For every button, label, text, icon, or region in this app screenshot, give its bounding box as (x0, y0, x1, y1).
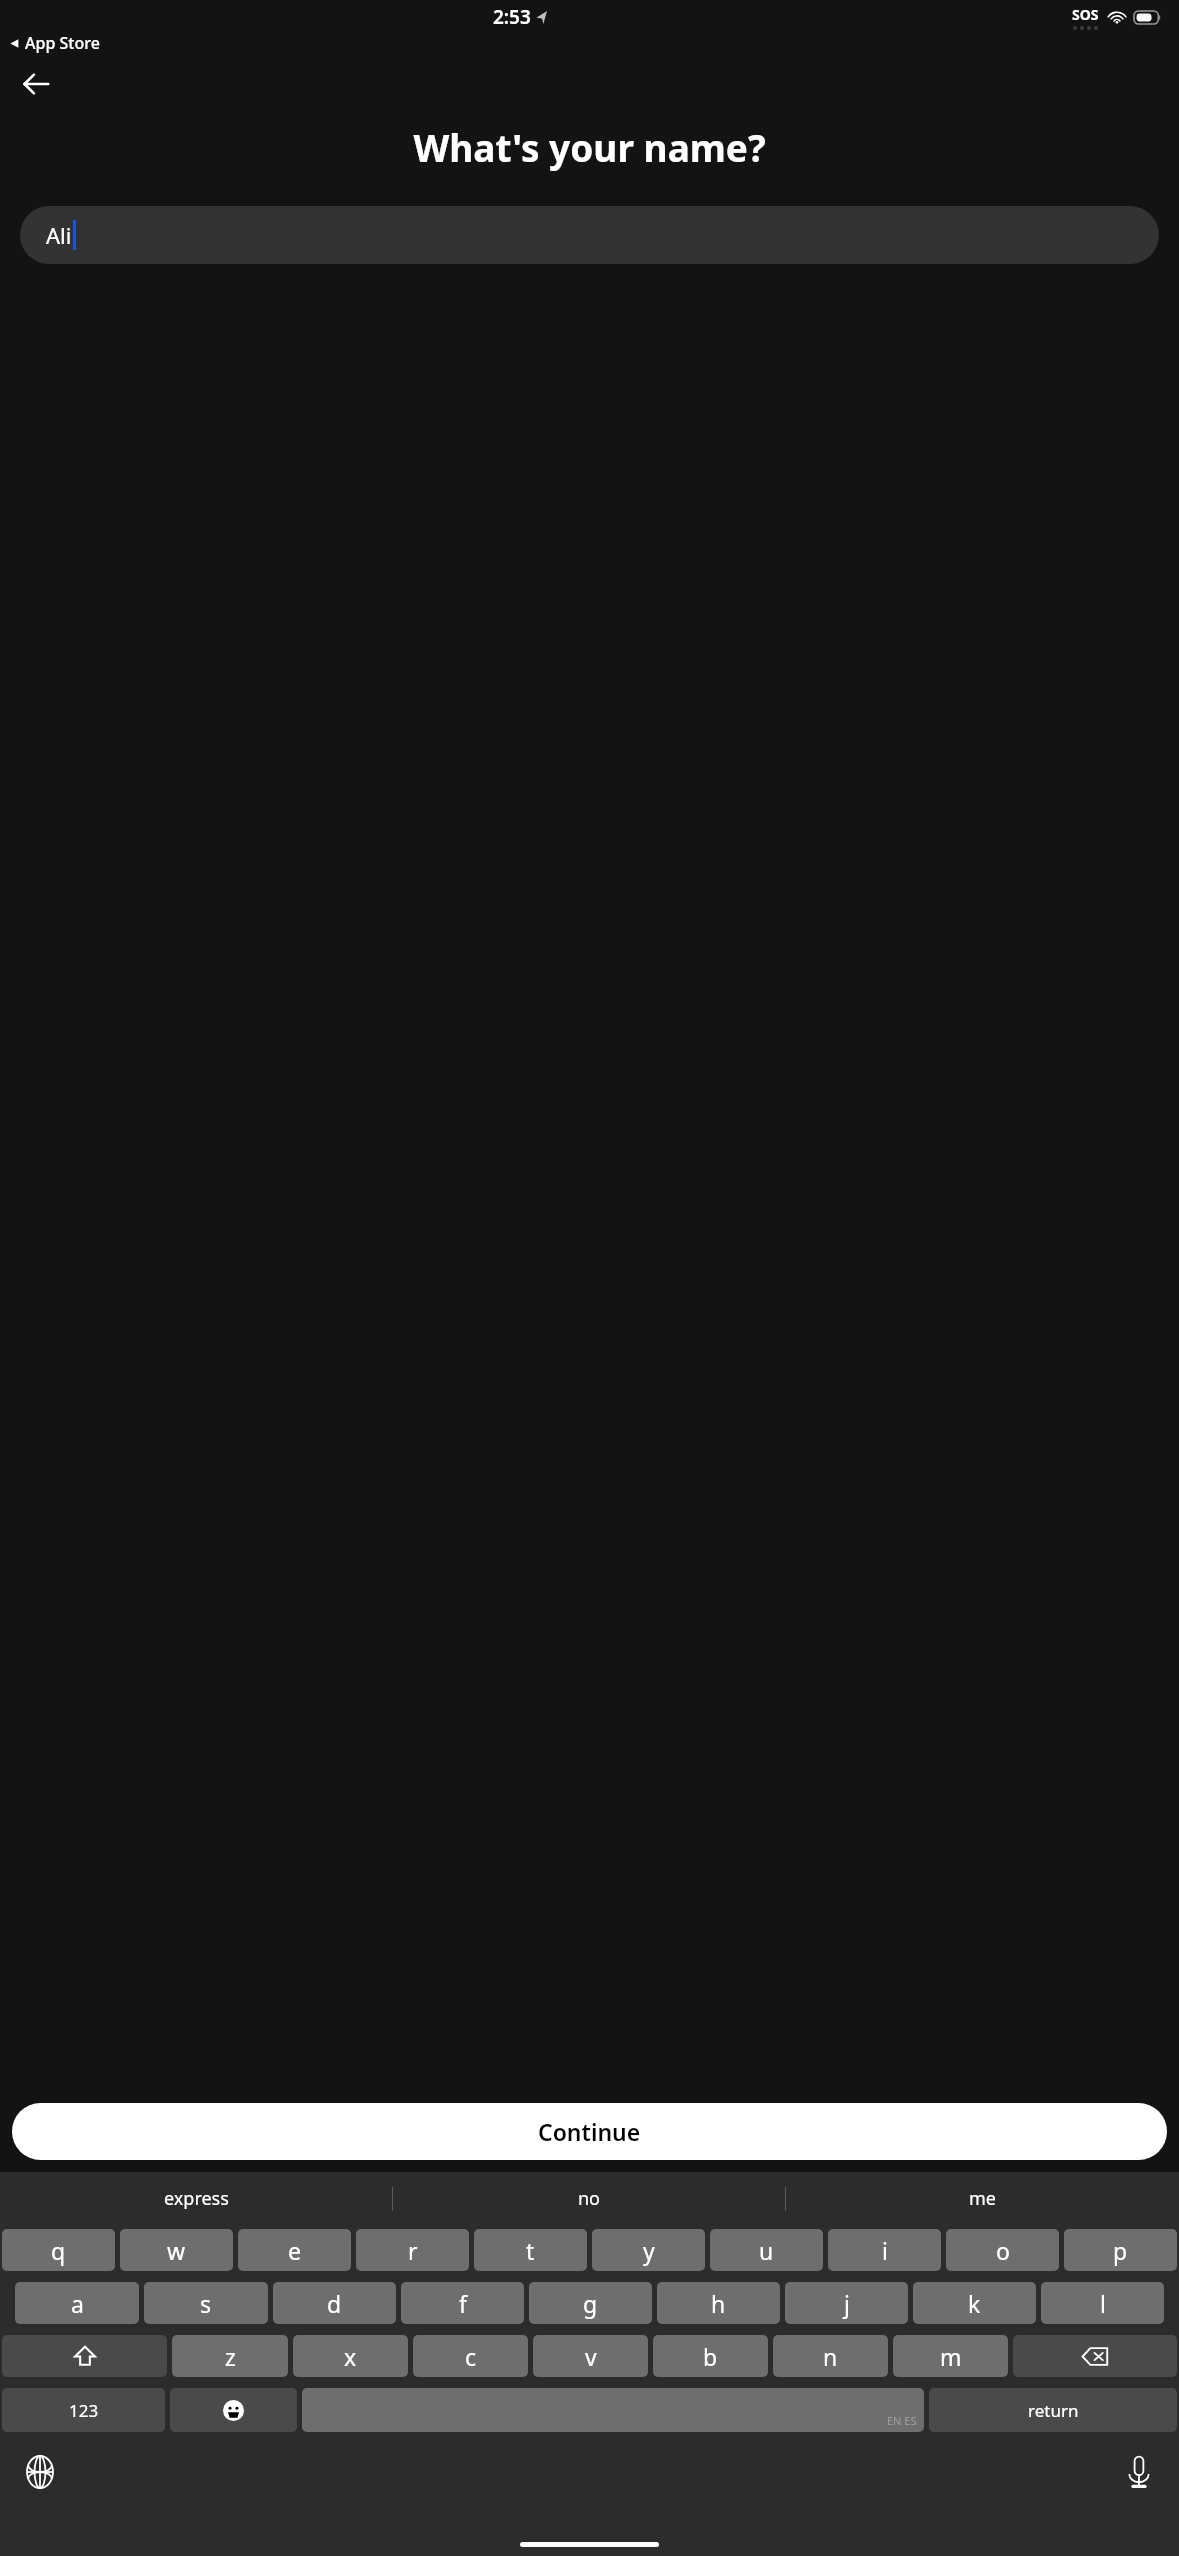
staticText: return (1028, 2399, 1079, 2422)
staticText: k (968, 2288, 981, 2319)
staticText: 123 (69, 2399, 99, 2422)
staticText: b (703, 2341, 718, 2372)
staticText: n (823, 2341, 838, 2372)
staticText: no (578, 2186, 601, 2211)
staticText: s (200, 2288, 212, 2319)
button[interactable]: p (1064, 2229, 1177, 2271)
button[interactable]: Change keyboard language (14, 2446, 66, 2498)
button[interactable]: c (413, 2335, 528, 2377)
staticText: x (344, 2341, 357, 2372)
button[interactable]: m (893, 2335, 1008, 2377)
button[interactable]: s (144, 2282, 268, 2324)
button[interactable]: t (474, 2229, 587, 2271)
staticText: g (583, 2288, 598, 2319)
button[interactable]: Continue (12, 2103, 1167, 2160)
staticText: w (167, 2235, 186, 2266)
button[interactable]: Backspace (1013, 2335, 1177, 2377)
button[interactable]: me (786, 2172, 1179, 2225)
button[interactable]: return (929, 2388, 1177, 2432)
button[interactable]: g (529, 2282, 652, 2324)
staticText: r (408, 2235, 418, 2266)
staticText: u (759, 2235, 774, 2266)
staticText: c (465, 2341, 477, 2372)
button[interactable]: v (533, 2335, 648, 2377)
button[interactable]: j (785, 2282, 908, 2324)
staticText: v (585, 2341, 597, 2372)
button[interactable]: k (913, 2282, 1036, 2324)
staticText: y (643, 2235, 655, 2266)
button[interactable]: Emoji (170, 2388, 297, 2432)
staticText: d (327, 2288, 342, 2319)
staticText: j (844, 2288, 850, 2319)
staticText: m (940, 2341, 962, 2372)
staticText: Ali (46, 220, 72, 250)
staticText: a (71, 2288, 84, 2319)
button[interactable]: r (356, 2229, 469, 2271)
button[interactable]: i (828, 2229, 941, 2271)
button[interactable]: b (653, 2335, 768, 2377)
button[interactable]: d (273, 2282, 396, 2324)
staticText: SOS (1072, 5, 1099, 24)
staticText: express (164, 2186, 229, 2211)
staticText: e (288, 2235, 301, 2266)
button[interactable]: f (401, 2282, 524, 2324)
staticText: What's your name? (0, 122, 1179, 172)
staticText: l (1100, 2288, 1106, 2319)
button[interactable]: Dictate (1113, 2446, 1165, 2498)
button[interactable]: a (15, 2282, 139, 2324)
button[interactable]: z (172, 2335, 288, 2377)
staticText: App Store (25, 32, 100, 54)
button[interactable]: y (592, 2229, 705, 2271)
staticText: z (225, 2341, 236, 2372)
button[interactable]: x (293, 2335, 408, 2377)
button[interactable]: e (238, 2229, 351, 2271)
staticText: h (711, 2288, 726, 2319)
staticText: me (969, 2186, 996, 2211)
button[interactable]: no (393, 2172, 786, 2225)
staticText: Continue (538, 2116, 641, 2147)
button[interactable]: Back (10, 58, 62, 110)
button[interactable]: q (2, 2229, 115, 2271)
button[interactable]: w (120, 2229, 233, 2271)
staticText: o (996, 2235, 1010, 2266)
staticText: f (459, 2288, 467, 2319)
button[interactable]: n (773, 2335, 888, 2377)
staticText: EN ES (887, 2413, 917, 2428)
button[interactable]: l (1041, 2282, 1164, 2324)
staticText: 2:53 (493, 4, 531, 30)
button[interactable]: 123 (2, 2388, 165, 2432)
button[interactable]: h (657, 2282, 780, 2324)
button[interactable]: Shift (2, 2335, 167, 2377)
staticText: p (1113, 2235, 1128, 2266)
button[interactable]: u (710, 2229, 823, 2271)
button[interactable]: Ali (20, 206, 1159, 264)
button[interactable]: o (946, 2229, 1059, 2271)
button[interactable]: express (0, 2172, 393, 2225)
staticText: q (51, 2235, 66, 2266)
staticText: t (526, 2235, 535, 2266)
staticText: i (882, 2235, 888, 2266)
